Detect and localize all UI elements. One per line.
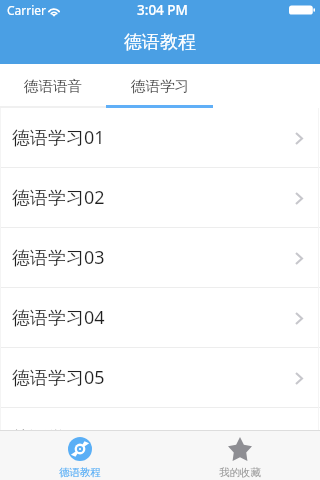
button[interactable]: 德语教程 [0,431,160,480]
staticText: 我的收藏 [219,466,261,479]
staticText: 德语学习04 [12,305,105,330]
button[interactable]: 德语学习 [106,64,213,105]
button[interactable]: 德语学习04 [0,288,320,347]
staticText: 德语教程 [59,466,101,479]
staticText: 德语语音 [24,77,82,95]
button[interactable]: 德语学习02 [0,168,320,227]
staticText: 德语学习05 [12,365,105,390]
button[interactable]: 德语语音 [0,64,106,105]
staticText: 德语学习01 [12,125,105,150]
staticText: 德语学习02 [12,185,105,210]
button[interactable]: 德语学习01 [0,108,320,167]
staticText: 3:04 PM [137,1,188,19]
button[interactable]: 德语学习03 [0,228,320,287]
staticText: 德语教程 [124,31,196,54]
staticText: 德语学习06 [12,425,105,430]
staticText: Carrier [7,2,47,18]
button[interactable]: 德语学习05 [0,348,320,407]
staticText: 德语学习 [131,77,189,95]
button[interactable]: 我的收藏 [160,431,320,480]
staticText: 德语学习03 [12,245,105,270]
